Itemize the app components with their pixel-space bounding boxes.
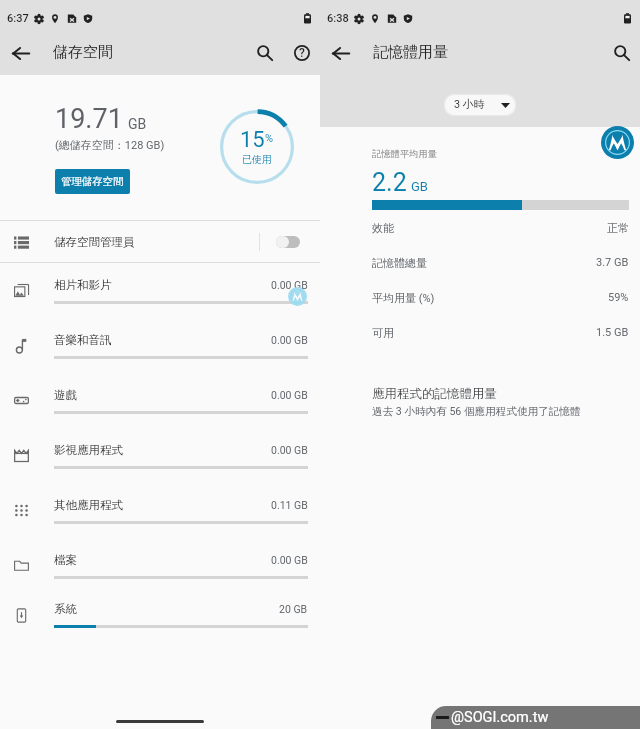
button[interactable]: Back: [320, 32, 362, 74]
staticText: 應用程式的記憶體用量: [372, 386, 497, 402]
staticText: 0.00 GB: [271, 444, 308, 456]
staticText: 檔案: [54, 553, 77, 567]
button[interactable]: 遊戲: [0, 373, 320, 428]
button[interactable]: 其他應用程式: [0, 483, 320, 538]
staticText: 影視應用程式: [54, 443, 123, 457]
staticText: 儲存空間: [53, 43, 113, 62]
staticText: 效能: [372, 221, 394, 235]
staticText: 記憶體平均用量: [372, 148, 438, 160]
staticText: 管理儲存空間: [61, 175, 124, 188]
staticText: 已使用: [242, 153, 272, 166]
staticText: 遊戲: [54, 388, 77, 402]
staticText: 6:38: [327, 12, 349, 25]
staticText: 過去 3 小時內有 56 個應用程式使用了記憶體: [372, 405, 581, 418]
staticText: 記憶體總量: [372, 256, 427, 270]
staticText: 3 小時: [454, 98, 485, 112]
staticText: GB: [128, 116, 147, 132]
button[interactable]: Search: [601, 32, 640, 74]
button[interactable]: 影視應用程式: [0, 428, 320, 483]
staticText: 19.71: [55, 103, 123, 135]
staticText: 1.5 GB: [596, 326, 629, 339]
button[interactable]: 相片和影片: [0, 263, 320, 318]
button[interactable]: 3 小時: [444, 94, 516, 116]
staticText: %: [265, 132, 274, 145]
staticText: 0.00 GB: [271, 334, 308, 346]
staticText: 6:37: [7, 12, 29, 25]
staticText: 59%: [608, 291, 629, 304]
button[interactable]: 管理儲存空間: [55, 169, 130, 194]
button[interactable]: 檔案: [0, 538, 320, 593]
staticText: 其他應用程式: [54, 498, 123, 512]
button[interactable]: 音樂和音訊: [0, 318, 320, 373]
staticText: 20 GB: [279, 603, 308, 615]
staticText: 正常: [607, 221, 629, 235]
button[interactable]: Help: [281, 32, 323, 74]
staticText: 3.7 GB: [596, 256, 629, 269]
staticText: 相片和影片: [54, 278, 112, 292]
staticText: 系統: [54, 602, 77, 616]
staticText: 0.00 GB: [271, 279, 308, 291]
button[interactable]: 儲存空間管理員: [0, 221, 320, 262]
staticText: 0.00 GB: [271, 389, 308, 401]
button[interactable]: Search: [244, 32, 286, 74]
staticText: 0.00 GB: [271, 554, 308, 566]
button[interactable]: Back: [0, 32, 42, 74]
staticText: (總儲存空間：128 GB): [55, 138, 165, 152]
staticText: 平均用量 (%): [372, 291, 435, 305]
staticText: 記憶體用量: [373, 43, 448, 62]
staticText: 2.2: [372, 168, 407, 197]
staticText: 15: [240, 127, 265, 153]
staticText: 0.11 GB: [271, 499, 308, 511]
staticText: GB: [411, 179, 428, 194]
staticText: @SOGI.com.tw: [451, 709, 549, 726]
staticText: 音樂和音訊: [54, 333, 112, 347]
staticText: 儲存空間管理員: [54, 235, 135, 249]
button[interactable]: 系統: [0, 593, 320, 637]
staticText: ?: [299, 46, 305, 60]
staticText: 可用: [372, 326, 394, 340]
